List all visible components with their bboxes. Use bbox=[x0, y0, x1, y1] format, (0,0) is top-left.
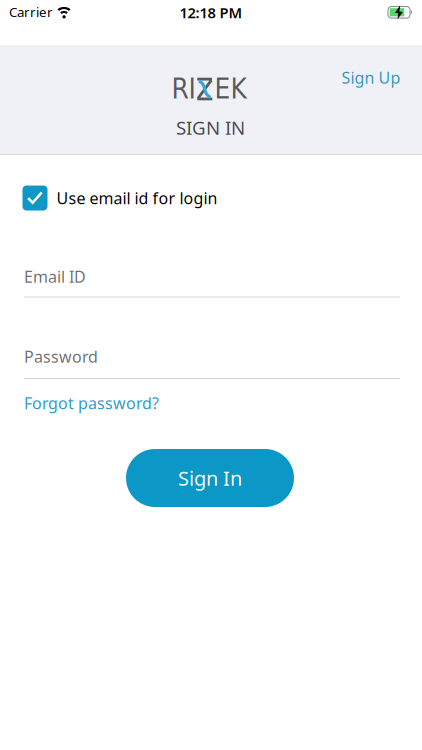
staticText: Use email id for login bbox=[56, 187, 217, 209]
staticText: 12:18 PM bbox=[179, 3, 242, 22]
button[interactable]: Use email id for login bbox=[22, 185, 217, 210]
button[interactable]: Sign In bbox=[126, 449, 294, 507]
staticText: Password bbox=[24, 346, 98, 367]
staticText: Email ID bbox=[24, 266, 86, 287]
staticText: Carrier bbox=[9, 3, 53, 21]
staticText: Sign In bbox=[178, 465, 242, 491]
button[interactable]: Sign Up bbox=[341, 67, 400, 88]
staticText: SIGN IN bbox=[176, 115, 245, 140]
staticText: RI bbox=[171, 73, 195, 105]
button[interactable]: Forgot password? bbox=[0, 0, 422, 750]
staticText: EK bbox=[214, 73, 246, 105]
staticText: Sign Up bbox=[341, 67, 400, 88]
staticText: Forgot password? bbox=[24, 392, 159, 414]
